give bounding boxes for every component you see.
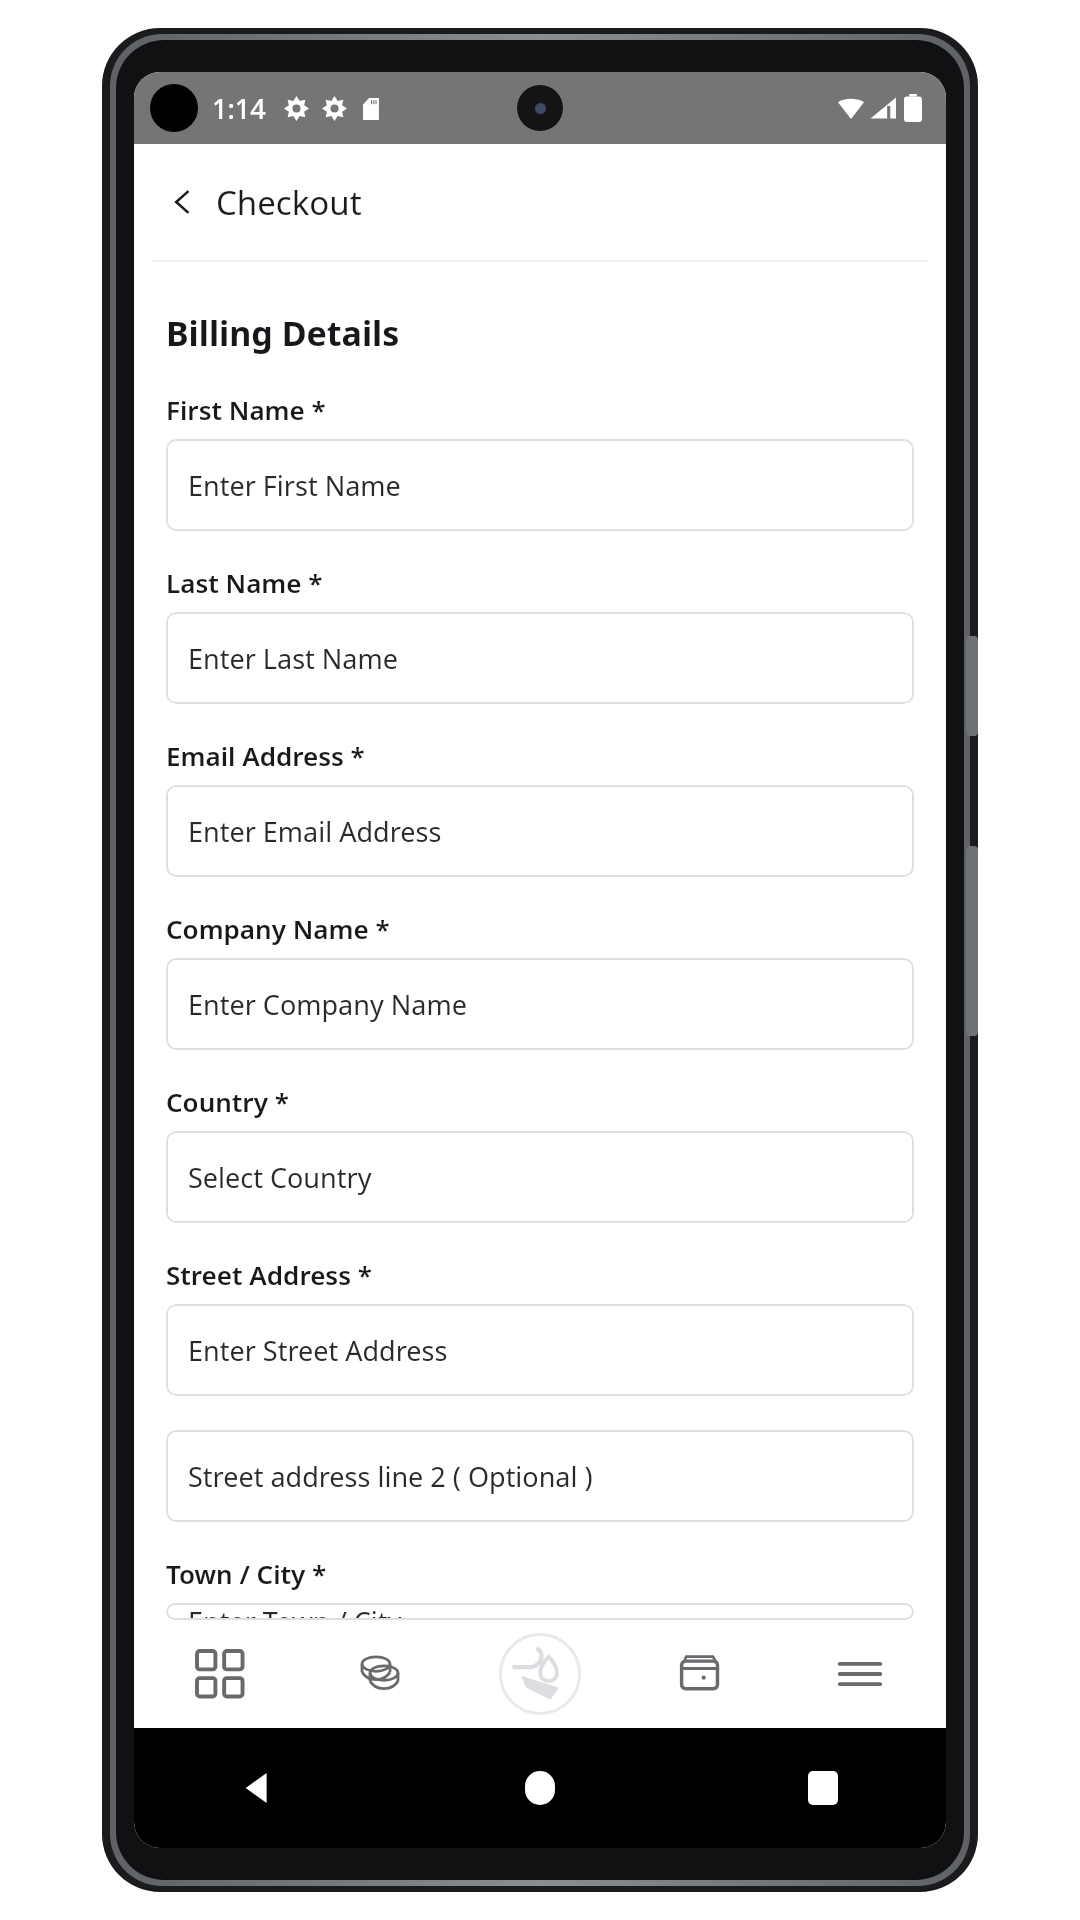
button[interactable]: Enter Email Address (166, 785, 914, 877)
staticText: Enter Email Address (188, 813, 442, 850)
button[interactable]: Donate (476, 1620, 604, 1728)
button[interactable]: Back (220, 1751, 294, 1825)
button[interactable]: Enter Street Address (166, 1304, 914, 1396)
button[interactable]: Wallet (636, 1620, 764, 1728)
staticText: Enter Town / City (188, 1603, 402, 1620)
staticText: Last Name * (166, 565, 323, 600)
staticText: Street Address * (166, 1257, 372, 1292)
button[interactable]: Enter Town / City (166, 1603, 914, 1620)
staticText: Country * (166, 1084, 289, 1119)
staticText: Enter Street Address (188, 1332, 448, 1369)
button[interactable]: Coins (316, 1620, 444, 1728)
staticText: Enter Company Name (188, 986, 467, 1023)
staticText: Billing Details (166, 310, 400, 356)
button[interactable]: Select Country (166, 1131, 914, 1223)
button[interactable]: Back (134, 144, 946, 260)
staticText: Company Name * (166, 911, 390, 946)
staticText: Email Address * (166, 738, 365, 773)
staticText: First Name * (166, 392, 326, 427)
button[interactable]: Street address line 2 ( Optional ) (166, 1430, 914, 1522)
staticText: Enter Last Name (188, 640, 398, 677)
staticText: Select Country (188, 1159, 372, 1196)
staticText: Street address line 2 ( Optional ) (188, 1458, 593, 1495)
other: Back (166, 185, 200, 219)
button[interactable]: Recent apps (786, 1751, 860, 1825)
button[interactable]: Dashboard (156, 1620, 284, 1728)
staticText: Enter First Name (188, 467, 401, 504)
button[interactable]: Enter First Name (166, 439, 914, 531)
button[interactable]: Enter Company Name (166, 958, 914, 1050)
button[interactable]: Enter Last Name (166, 612, 914, 704)
staticText: Town / City * (166, 1556, 327, 1591)
button[interactable]: Menu (796, 1620, 924, 1728)
button[interactable]: Home (503, 1751, 577, 1825)
staticText: 1:14 (212, 90, 266, 127)
staticText: Checkout (216, 180, 362, 225)
